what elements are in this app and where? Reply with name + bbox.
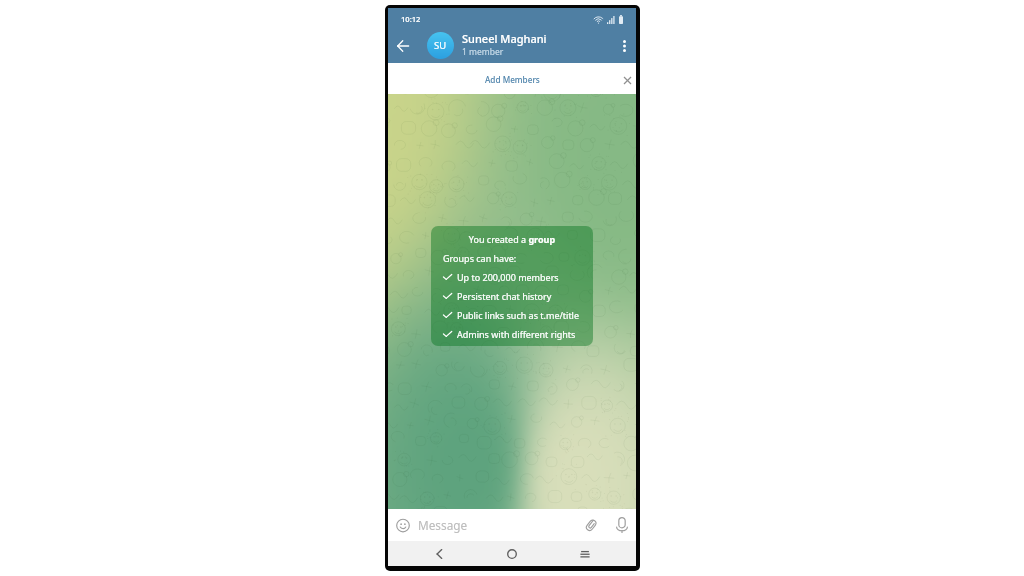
- staticText: 1 member: [462, 46, 504, 58]
- staticText: Suneel Maghani: [462, 31, 547, 46]
- button[interactable]: SU: [427, 32, 454, 59]
- staticText: Public links such as t.me/title: [457, 309, 580, 321]
- button[interactable]: Back: [388, 31, 418, 61]
- button[interactable]: Suneel Maghani: [462, 31, 608, 58]
- button[interactable]: Voice message: [609, 512, 635, 538]
- staticText: Message: [418, 517, 578, 533]
- button[interactable]: Back: [422, 541, 456, 566]
- staticText: Up to 200,000 members: [457, 271, 559, 283]
- button[interactable]: More options: [611, 32, 638, 59]
- staticText: Groups can have:: [443, 252, 517, 264]
- button[interactable]: Add Members: [388, 63, 636, 94]
- button[interactable]: Recents: [568, 541, 602, 566]
- button[interactable]: Emoji: [390, 512, 416, 538]
- staticText: Persistent chat history: [457, 290, 552, 302]
- staticText: SU: [434, 39, 447, 52]
- staticText: You created a group: [443, 233, 581, 245]
- staticText: 10:12: [401, 14, 421, 24]
- staticText: Add Members: [485, 74, 540, 85]
- button[interactable]: Close: [616, 69, 638, 91]
- button[interactable]: Attach: [578, 512, 604, 538]
- button[interactable]: Home: [495, 541, 529, 566]
- staticText: Admins with different rights: [457, 328, 576, 340]
